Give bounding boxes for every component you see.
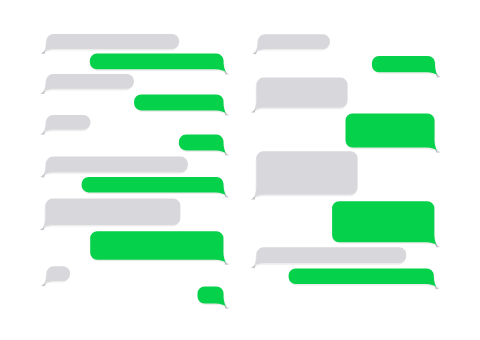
button[interactable]: Received message bubble 5 bbox=[46, 115, 91, 130]
button[interactable]: Received message bubble 9 bbox=[45, 199, 180, 225]
button[interactable]: Sent message bubble 6 bbox=[179, 135, 224, 151]
button[interactable]: Sent message bubble 10 bbox=[90, 231, 223, 260]
button[interactable]: Received message bubble 1 bbox=[46, 34, 179, 49]
button[interactable]: Received message bubble 17 bbox=[256, 151, 357, 194]
button[interactable]: Sent message bubble 14 bbox=[372, 56, 435, 72]
button[interactable]: Received message bubble 7 bbox=[46, 157, 188, 173]
button[interactable]: Received message bubble 13 bbox=[258, 34, 330, 49]
button[interactable]: Received message bubble 3 bbox=[46, 74, 134, 89]
button[interactable]: Sent message bubble 4 bbox=[134, 94, 223, 110]
button[interactable]: Sent message bubble 16 bbox=[346, 114, 435, 148]
button[interactable]: Sent message bubble 20 bbox=[289, 268, 434, 284]
button[interactable]: Sent message bubble 12 bbox=[198, 287, 224, 304]
button[interactable]: Received message bubble 15 bbox=[257, 78, 348, 108]
button[interactable]: Sent message bubble 2 bbox=[90, 54, 224, 70]
button[interactable]: Received message bubble 19 bbox=[257, 247, 407, 263]
button[interactable]: Sent message bubble 8 bbox=[82, 177, 224, 192]
button[interactable]: Sent message bubble 18 bbox=[332, 201, 434, 242]
button[interactable]: Received message bubble 11 bbox=[47, 266, 70, 281]
